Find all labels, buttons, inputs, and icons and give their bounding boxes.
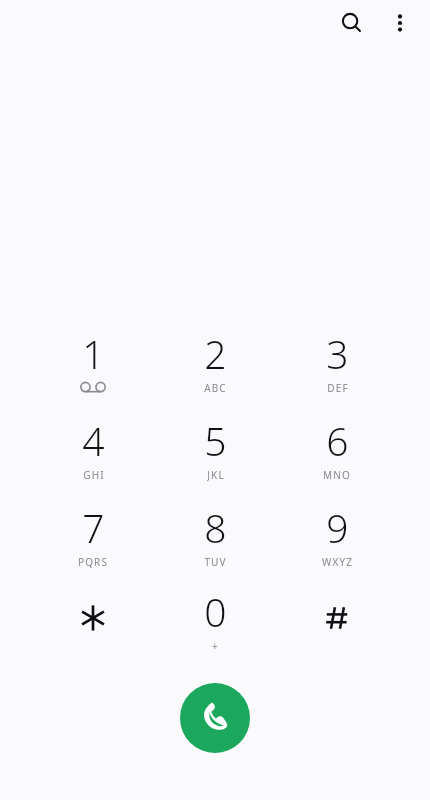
staticText: 8 [204,501,227,554]
staticText: 2 [204,327,227,380]
staticText: 7 [82,501,105,554]
button[interactable]: 2 [154,317,276,404]
button[interactable]: 9 [276,491,398,578]
staticText: 0 [204,585,227,638]
button[interactable]: 0 [154,578,276,658]
staticText: WXYZ [322,555,353,568]
staticText: GHI [83,468,105,481]
button[interactable]: 3 [276,317,398,404]
staticText: JKL [207,468,225,481]
button[interactable]: Search [328,0,376,45]
button[interactable]: 4 [32,404,154,491]
staticText: MNO [323,468,351,481]
staticText: PQRS [78,555,108,568]
staticText: DEF [327,381,349,394]
button[interactable]: 1 [32,317,154,404]
staticText: 6 [326,414,349,467]
staticText: + [212,639,219,652]
button[interactable]: Call [180,683,250,753]
staticText: TUV [204,555,227,568]
button[interactable]: More options [376,0,424,45]
staticText: 9 [326,501,349,554]
staticText: 1 [82,327,105,380]
staticText: 3 [326,327,349,380]
button[interactable]: 8 [154,491,276,578]
button[interactable]: Star [32,578,154,658]
staticText: 5 [204,414,227,467]
staticText: ABC [204,381,227,394]
button[interactable]: 7 [32,491,154,578]
staticText: 4 [82,414,105,467]
button[interactable]: 6 [276,404,398,491]
button[interactable]: Pound [276,578,398,658]
button[interactable]: 5 [154,404,276,491]
